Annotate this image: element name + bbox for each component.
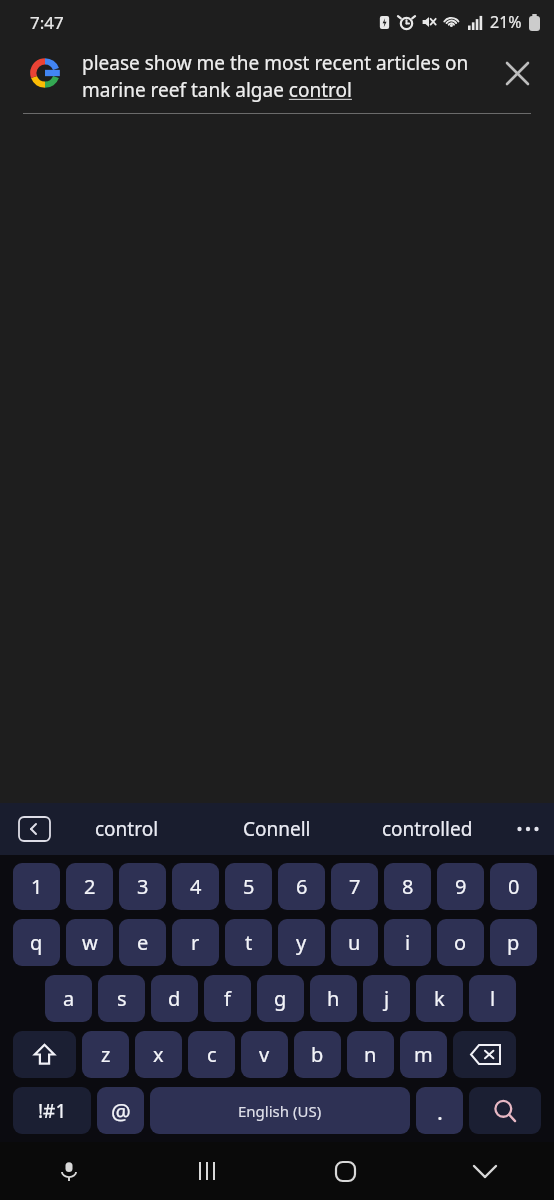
button[interactable]: y [278, 919, 325, 966]
staticText: l [490, 985, 496, 1012]
button[interactable]: Voice input [0, 1142, 138, 1200]
button[interactable]: h [310, 975, 357, 1022]
staticText: Connell [243, 816, 311, 842]
button[interactable]: s [98, 975, 145, 1022]
staticText: 21% [490, 11, 522, 33]
staticText: k [434, 985, 445, 1012]
button[interactable]: English (US) [150, 1087, 410, 1134]
staticText: w [82, 929, 98, 956]
staticText: x [153, 1041, 164, 1068]
staticText: control [95, 816, 159, 842]
button[interactable]: u [331, 919, 378, 966]
staticText: e [137, 929, 149, 956]
staticText: 4 [190, 873, 202, 900]
button[interactable]: 6 [278, 863, 325, 910]
button[interactable]: 0 [490, 863, 537, 910]
staticText: @ [111, 1096, 131, 1126]
staticText: 3 [137, 873, 149, 900]
button[interactable]: q [13, 919, 60, 966]
button[interactable]: d [151, 975, 198, 1022]
button[interactable]: k [416, 975, 463, 1022]
staticText: controlled [382, 816, 473, 842]
button[interactable]: Search [469, 1087, 541, 1134]
button[interactable]: 3 [119, 863, 166, 910]
button[interactable]: 7 [331, 863, 378, 910]
staticText: u [348, 929, 361, 956]
button[interactable]: 8 [384, 863, 431, 910]
staticText: f [224, 985, 231, 1012]
button[interactable]: @ [97, 1087, 144, 1134]
staticText: q [30, 929, 43, 956]
staticText: 1 [31, 873, 43, 900]
staticText: please show me the most recent articles … [82, 50, 494, 103]
button[interactable]: 5 [225, 863, 272, 910]
staticText: j [384, 985, 390, 1012]
staticText: English (US) [238, 1101, 322, 1121]
staticText: v [259, 1041, 270, 1068]
staticText: 5 [243, 873, 255, 900]
button[interactable]: 9 [437, 863, 484, 910]
staticText: c [207, 1041, 217, 1068]
button[interactable]: Previous suggestions [18, 816, 51, 842]
staticText: 9 [455, 873, 467, 900]
staticText: 0 [508, 873, 520, 900]
button[interactable]: j [363, 975, 410, 1022]
staticText: 7 [349, 873, 361, 900]
staticText: z [101, 1041, 111, 1068]
button[interactable]: Clear [494, 50, 540, 96]
staticText: t [245, 929, 253, 956]
button[interactable]: control [51, 803, 202, 855]
staticText: s [117, 985, 127, 1012]
button[interactable]: Recents [138, 1142, 276, 1200]
button[interactable]: More options [502, 803, 554, 855]
button[interactable]: m [400, 1031, 447, 1078]
staticText: m [414, 1041, 433, 1068]
button[interactable]: z [82, 1031, 129, 1078]
button[interactable]: g [257, 975, 304, 1022]
button[interactable]: l [469, 975, 516, 1022]
button[interactable]: w [66, 919, 113, 966]
button[interactable]: Backspace [453, 1031, 516, 1078]
staticText: !#1 [38, 1098, 67, 1124]
button[interactable]: . [416, 1087, 463, 1134]
staticText: b [311, 1041, 324, 1068]
staticText: o [454, 929, 467, 956]
staticText: a [63, 985, 75, 1012]
staticText: g [274, 985, 287, 1012]
button[interactable]: x [135, 1031, 182, 1078]
button[interactable]: f [204, 975, 251, 1022]
staticText: 2 [84, 873, 96, 900]
button[interactable]: e [119, 919, 166, 966]
button[interactable]: b [294, 1031, 341, 1078]
button[interactable]: 2 [66, 863, 113, 910]
button[interactable]: 1 [13, 863, 60, 910]
button[interactable]: n [347, 1031, 394, 1078]
button[interactable]: Connell [202, 803, 352, 855]
button[interactable]: a [45, 975, 92, 1022]
button[interactable]: Home [276, 1142, 415, 1200]
button[interactable]: v [241, 1031, 288, 1078]
staticText: r [191, 929, 200, 956]
button[interactable]: 4 [172, 863, 219, 910]
button[interactable]: t [225, 919, 272, 966]
button[interactable]: controlled [352, 803, 502, 855]
button[interactable]: r [172, 919, 219, 966]
staticText: i [405, 929, 411, 956]
staticText: d [168, 985, 181, 1012]
button[interactable]: o [437, 919, 484, 966]
button[interactable]: p [490, 919, 537, 966]
button[interactable]: Shift [13, 1031, 76, 1078]
staticText: 6 [296, 873, 308, 900]
staticText: n [364, 1041, 377, 1068]
button[interactable]: Hide keyboard [415, 1142, 554, 1200]
staticText: p [507, 929, 520, 956]
staticText: h [327, 985, 340, 1012]
button[interactable]: !#1 [13, 1087, 91, 1134]
staticText: 8 [402, 873, 414, 900]
button[interactable]: c [188, 1031, 235, 1078]
staticText: y [296, 929, 307, 956]
button[interactable]: i [384, 919, 431, 966]
staticText: . [437, 1096, 443, 1126]
staticText: 7:47 [30, 11, 64, 34]
